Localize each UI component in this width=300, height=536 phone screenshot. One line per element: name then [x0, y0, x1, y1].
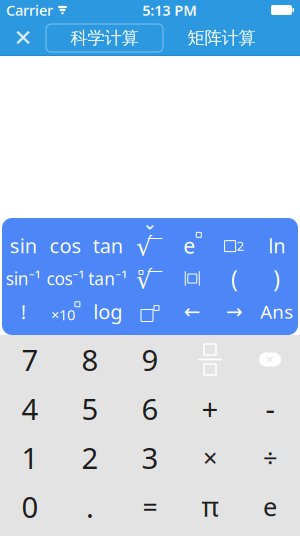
staticText: 2	[81, 438, 98, 477]
button[interactable]: log	[87, 295, 129, 328]
staticText: sin⁻¹	[6, 267, 41, 290]
staticText: 0	[21, 487, 38, 526]
button[interactable]: 7	[0, 337, 60, 381]
staticText: 3	[141, 438, 158, 477]
button[interactable]: =	[120, 484, 180, 528]
button[interactable]: 0	[0, 484, 60, 528]
button[interactable]: tan	[87, 229, 129, 262]
staticText: 9	[141, 340, 158, 379]
button[interactable]: e	[171, 229, 213, 262]
staticText: 6	[141, 389, 158, 428]
staticText: ✕	[13, 25, 32, 51]
staticText: +	[201, 389, 218, 428]
staticText: )	[273, 263, 280, 293]
staticText: -	[265, 389, 274, 428]
staticText: 科学计算	[70, 27, 138, 49]
button[interactable]: )	[256, 262, 298, 295]
staticText: sin	[10, 232, 37, 259]
button[interactable]: cos⁻¹	[44, 262, 87, 295]
button[interactable]: ÷	[240, 435, 300, 479]
button[interactable]: sin	[2, 229, 44, 262]
staticText: 2	[237, 237, 245, 254]
staticText: tan⁻¹	[88, 267, 127, 290]
button[interactable]: sin⁻¹	[2, 262, 44, 295]
staticText: .	[86, 487, 94, 526]
button[interactable]: -	[240, 386, 300, 430]
staticText: →	[226, 300, 243, 323]
button[interactable]: 1	[0, 435, 60, 479]
button[interactable]: +	[180, 386, 240, 430]
staticText: 5	[81, 389, 98, 428]
button[interactable]: Fraction	[180, 337, 240, 381]
button[interactable]: cos	[44, 229, 87, 262]
button[interactable]	[129, 295, 171, 328]
button[interactable]: Delete	[240, 337, 300, 381]
staticText: √	[136, 265, 152, 294]
button[interactable]	[171, 262, 213, 295]
staticText: ←	[184, 300, 201, 323]
button[interactable]: tan⁻¹	[87, 262, 129, 295]
button[interactable]: Collapse keyboard	[130, 218, 170, 229]
button[interactable]: (	[213, 262, 256, 295]
button[interactable]: √	[129, 229, 171, 262]
button[interactable]: .	[60, 484, 120, 528]
button[interactable]: 3	[120, 435, 180, 479]
button[interactable]: 9	[120, 337, 180, 381]
staticText: ln	[268, 232, 285, 259]
staticText: √	[136, 232, 152, 261]
staticText: e	[183, 231, 195, 260]
staticText: 4	[21, 389, 38, 428]
staticText: Ans	[260, 299, 293, 324]
button[interactable]: Ans	[256, 295, 298, 328]
button[interactable]: 6	[120, 386, 180, 430]
staticText: log	[93, 298, 122, 325]
staticText: e	[263, 490, 277, 523]
staticText: cos⁻¹	[46, 267, 84, 290]
staticText: 矩阵计算	[187, 27, 255, 49]
staticText: tan	[93, 232, 123, 259]
staticText: 1	[21, 438, 38, 477]
staticText: ×	[203, 441, 217, 474]
staticText: ×10	[51, 305, 75, 324]
button[interactable]: 2	[213, 229, 256, 262]
staticText: =	[142, 489, 157, 524]
button[interactable]: 4	[0, 386, 60, 430]
button[interactable]: Close	[0, 20, 46, 56]
button[interactable]: ln	[256, 229, 298, 262]
button[interactable]: √	[129, 262, 171, 295]
button[interactable]: →	[213, 295, 256, 328]
staticText: ÷	[263, 441, 277, 474]
staticText: 8	[81, 340, 98, 379]
button[interactable]: π	[180, 484, 240, 528]
button[interactable]: 5	[60, 386, 120, 430]
staticText: ⌄	[142, 214, 157, 233]
staticText: π	[201, 489, 218, 524]
staticText: (	[231, 263, 238, 293]
button[interactable]: ×	[180, 435, 240, 479]
button[interactable]: 8	[60, 337, 120, 381]
button[interactable]: 2	[60, 435, 120, 479]
button[interactable]: ←	[171, 295, 213, 328]
staticText: 7	[21, 340, 38, 379]
staticText: ✕	[265, 353, 274, 365]
button[interactable]: ×10	[44, 295, 87, 328]
staticText: cos	[49, 232, 81, 259]
button[interactable]: 矩阵计算	[163, 24, 280, 52]
staticText: Carrier	[6, 0, 53, 20]
button[interactable]: !	[2, 295, 44, 328]
button[interactable]: e	[240, 484, 300, 528]
staticText: 5:13 PM	[142, 0, 197, 20]
button[interactable]: 科学计算	[46, 24, 163, 52]
staticText: !	[21, 298, 26, 325]
